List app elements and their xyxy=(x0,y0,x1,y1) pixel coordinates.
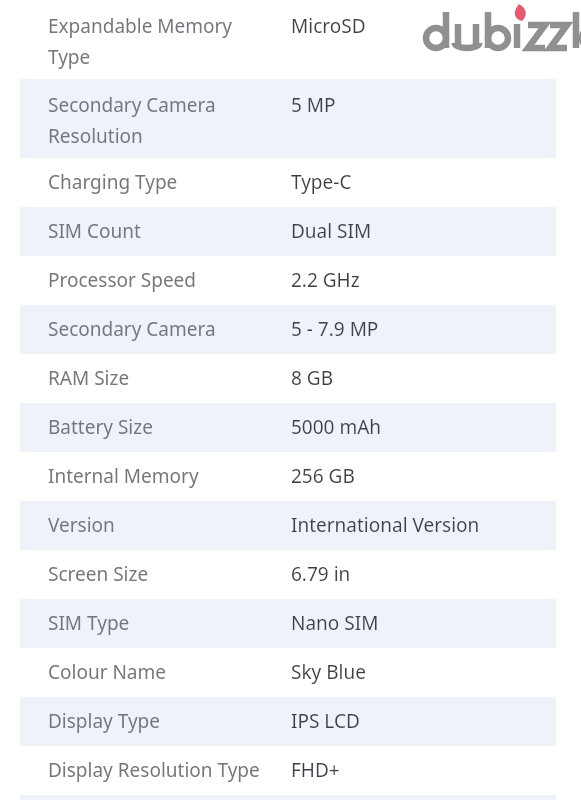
button[interactable]: Processor Speed xyxy=(0,256,581,305)
staticText: Processor Speed xyxy=(48,267,197,293)
staticText: Version xyxy=(48,512,115,538)
staticText: RAM Size xyxy=(48,365,130,391)
button[interactable] xyxy=(0,795,581,800)
staticText: 5 - 7.9 MP xyxy=(291,316,379,342)
staticText: IPS LCD xyxy=(291,708,360,734)
staticText: Battery Size xyxy=(48,414,153,440)
staticText: 6.79 in xyxy=(291,561,351,587)
button[interactable]: Charging Type xyxy=(0,158,581,207)
staticText: 5000 mAh xyxy=(291,414,382,440)
button[interactable]: Internal Memory xyxy=(0,452,581,501)
button[interactable]: Battery Size xyxy=(0,403,581,452)
staticText: 256 GB xyxy=(291,463,355,489)
other: dubizzle logo xyxy=(424,2,581,54)
staticText: Sky Blue xyxy=(291,659,366,685)
staticText: SIM Count xyxy=(48,218,141,244)
button[interactable]: Version xyxy=(0,501,581,550)
button[interactable]: Screen Size xyxy=(0,550,581,599)
button[interactable]: Display Type xyxy=(0,697,581,746)
button[interactable]: SIM Count xyxy=(0,207,581,256)
staticText: 5 MP xyxy=(291,92,336,118)
staticText: Display Type xyxy=(48,708,161,734)
staticText: Nano SIM xyxy=(291,610,379,636)
staticText: Secondary Camera xyxy=(48,316,216,342)
staticText: Secondary Camera Resolution xyxy=(48,92,216,148)
staticText: International Version xyxy=(291,512,480,538)
button[interactable]: Colour Name xyxy=(0,648,581,697)
staticText: Display Resolution Type xyxy=(48,757,260,783)
button[interactable]: Expandable Memory Type xyxy=(0,0,581,79)
staticText: Charging Type xyxy=(48,169,178,195)
staticText: Type-C xyxy=(291,169,352,195)
staticText: Colour Name xyxy=(48,659,167,685)
staticText: SIM Type xyxy=(48,610,130,636)
button[interactable]: Display Resolution Type xyxy=(0,746,581,795)
staticText: 2.2 GHz xyxy=(291,267,360,293)
staticText: Expandable Memory Type xyxy=(48,13,233,69)
staticText: FHD+ xyxy=(291,757,340,783)
staticText: 8 GB xyxy=(291,365,333,391)
staticText: Internal Memory xyxy=(48,463,199,489)
staticText: MicroSD xyxy=(291,13,366,39)
button[interactable]: Secondary Camera xyxy=(0,305,581,354)
button[interactable]: RAM Size xyxy=(0,354,581,403)
button[interactable]: Secondary Camera Resolution xyxy=(0,79,581,158)
button[interactable]: SIM Type xyxy=(0,599,581,648)
staticText: Screen Size xyxy=(48,561,149,587)
staticText: Dual SIM xyxy=(291,218,372,244)
